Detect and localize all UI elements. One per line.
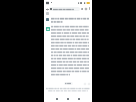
button[interactable]: Menu [46, 12, 49, 15]
button[interactable]: Tabs [84, 7, 88, 11]
button[interactable]: More options [88, 7, 91, 10]
button[interactable]: Reply [83, 82, 86, 85]
button[interactable]: Forward [77, 97, 81, 101]
button[interactable]: More [87, 82, 90, 85]
button[interactable]: Share [80, 7, 84, 11]
button[interactable]: Reply all [66, 97, 70, 101]
button[interactable] [49, 7, 80, 11]
button[interactable] [64, 82, 73, 85]
button[interactable]: Reply [55, 97, 59, 101]
button[interactable]: Back [45, 7, 49, 11]
